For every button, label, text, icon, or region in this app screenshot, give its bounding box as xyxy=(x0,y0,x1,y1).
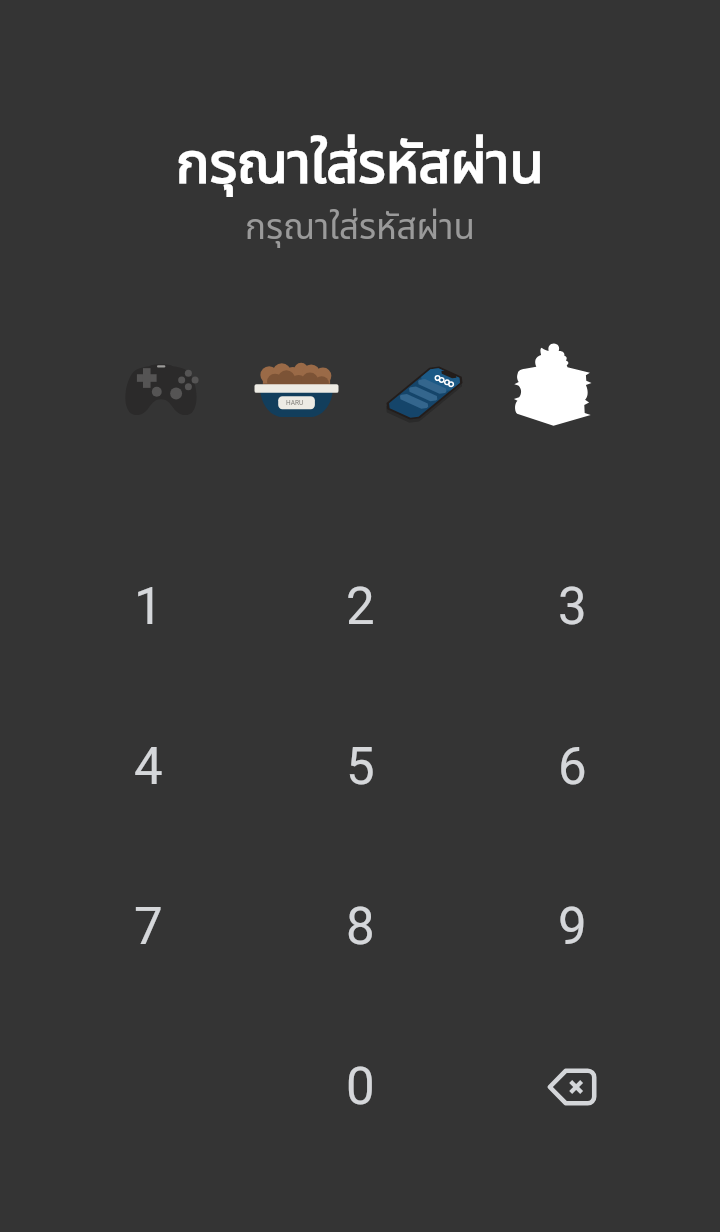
staticText: 8 xyxy=(346,897,375,957)
staticText: 7 xyxy=(134,897,163,957)
staticText: 0 xyxy=(346,1057,375,1117)
button[interactable]: 8 xyxy=(254,847,466,1007)
staticText: 6 xyxy=(558,737,587,797)
staticText: กรุณาใส่รหัสผ่าน xyxy=(0,202,720,255)
staticText: 5 xyxy=(346,737,375,797)
button[interactable]: 0 xyxy=(254,1007,466,1167)
staticText: HARU xyxy=(286,399,304,407)
staticText: 4 xyxy=(134,737,163,797)
button[interactable]: 4 xyxy=(42,687,254,847)
staticText: 1 xyxy=(134,577,163,637)
button[interactable]: 3 xyxy=(466,527,678,687)
staticText: 2 xyxy=(346,577,375,637)
staticText: 3 xyxy=(558,577,587,637)
button[interactable]: 9 xyxy=(466,847,678,1007)
staticText: กรุณาใส่รหัสผ่าน xyxy=(0,123,720,208)
button[interactable]: 6 xyxy=(466,687,678,847)
button[interactable]: 2 xyxy=(254,527,466,687)
button[interactable]: 5 xyxy=(254,687,466,847)
button[interactable]: 1 xyxy=(42,527,254,687)
staticText: 9 xyxy=(558,897,587,957)
button[interactable]: 7 xyxy=(42,847,254,1007)
button[interactable]: Backspace xyxy=(466,1007,678,1167)
